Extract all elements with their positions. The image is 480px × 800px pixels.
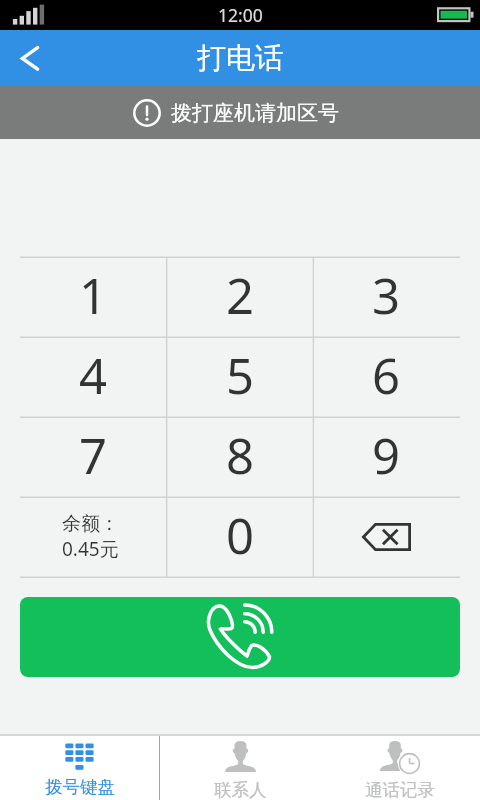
staticText: 8: [226, 422, 255, 489]
button[interactable]: 余额：: [20, 497, 167, 577]
button[interactable]: 5: [167, 337, 314, 417]
button[interactable]: 4: [20, 337, 167, 417]
button[interactable]: 3: [313, 257, 460, 337]
staticText: 余额：: [62, 512, 119, 536]
button[interactable]: 拨号键盘: [0, 736, 159, 800]
staticText: 2: [226, 262, 255, 329]
button[interactable]: 1: [20, 257, 167, 337]
staticText: 联系人: [214, 779, 267, 800]
button[interactable]: 6: [313, 337, 460, 417]
button[interactable]: 7: [20, 417, 167, 497]
button[interactable]: 0: [167, 497, 314, 577]
button[interactable]: 通话记录: [320, 736, 480, 800]
staticText: 拨打座机请加区号: [171, 100, 339, 126]
staticText: 打电话: [197, 40, 284, 77]
staticText: 6: [372, 342, 401, 409]
staticText: 4: [79, 342, 108, 409]
button[interactable]: 联系人: [160, 736, 320, 800]
button[interactable]: 9: [313, 417, 460, 497]
staticText: 1: [79, 262, 108, 329]
button[interactable]: 2: [167, 257, 314, 337]
button[interactable]: Back: [0, 30, 58, 86]
staticText: 3: [372, 262, 401, 329]
staticText: 12:00: [218, 3, 263, 27]
staticText: 拨号键盘: [45, 776, 115, 798]
button[interactable]: 8: [167, 417, 314, 497]
staticText: 9: [372, 422, 401, 489]
staticText: 5: [226, 342, 255, 409]
button[interactable]: Backspace: [313, 497, 460, 577]
staticText: 通话记录: [365, 779, 435, 800]
staticText: 7: [79, 422, 108, 489]
staticText: 0: [226, 502, 255, 569]
button[interactable]: Call: [20, 597, 460, 677]
staticText: 0.45元: [62, 536, 119, 562]
